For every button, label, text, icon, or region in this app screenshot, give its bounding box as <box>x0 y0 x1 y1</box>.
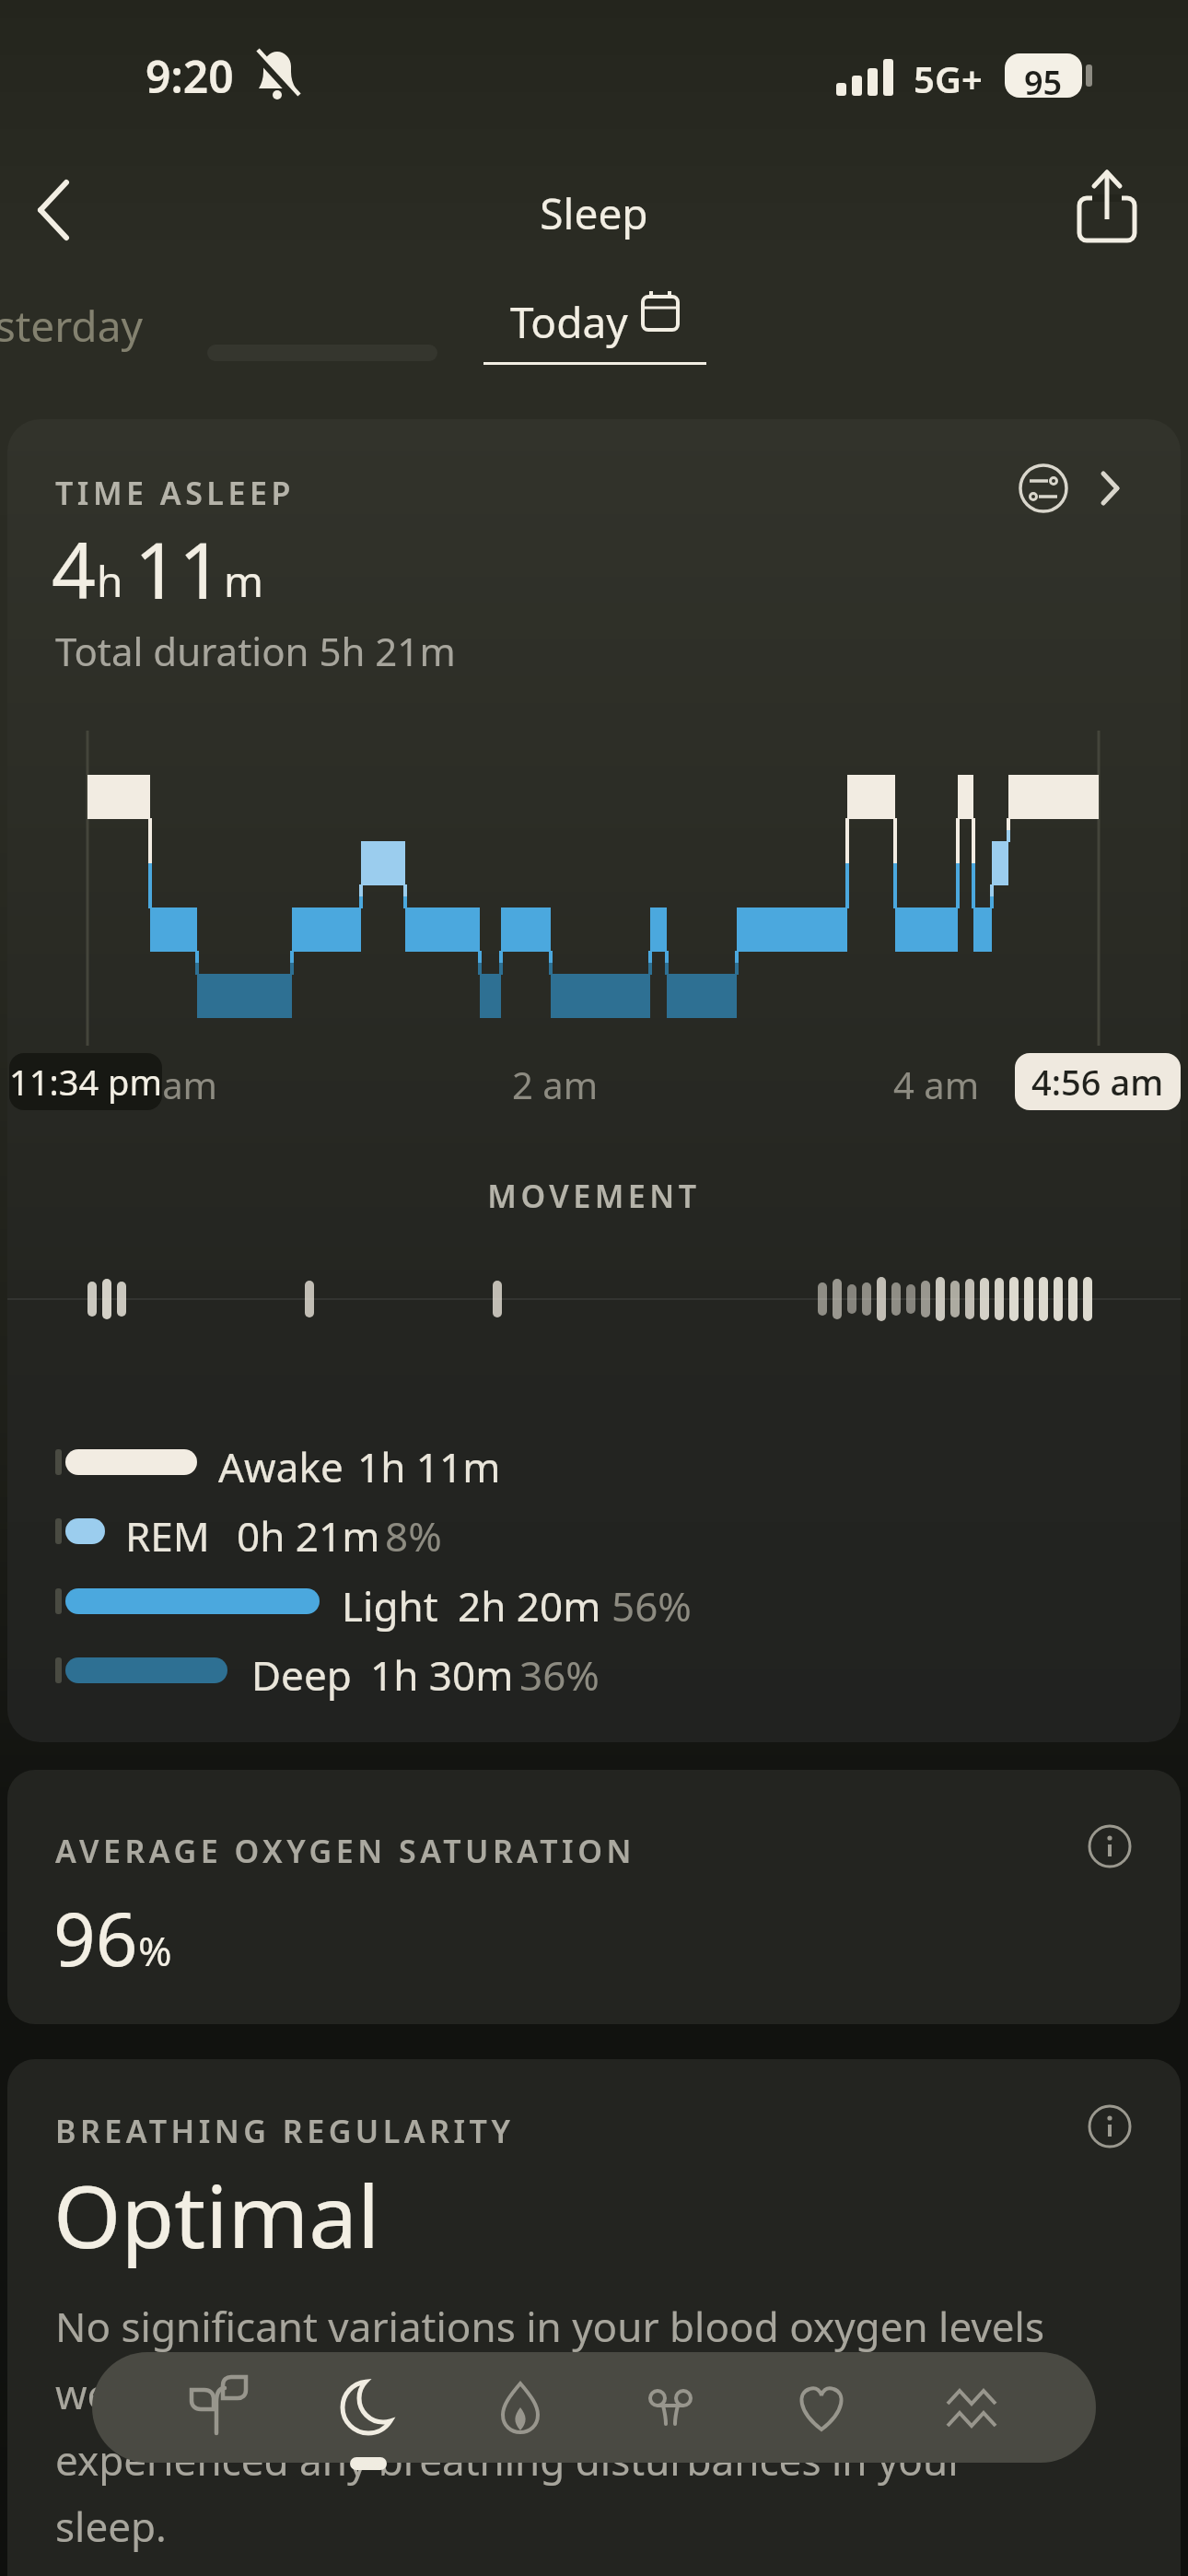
button[interactable] <box>1073 2090 1147 2163</box>
button[interactable] <box>7 1770 1181 2024</box>
staticText: Deep <box>251 1647 352 1703</box>
staticText: REM <box>125 1508 210 1563</box>
button[interactable] <box>460 272 718 369</box>
staticText: AVERAGE OXYGEN SATURATION <box>55 1830 635 1872</box>
button[interactable] <box>748 2352 895 2463</box>
staticText: 4:56 am <box>1031 1058 1164 1106</box>
staticText: 0h 21m <box>237 1508 380 1563</box>
staticText: 9:20 <box>146 46 234 106</box>
staticText: Today <box>510 293 628 351</box>
staticText: 96 <box>53 1887 138 1987</box>
staticText: Total duration 5h 21m <box>55 625 456 677</box>
button[interactable] <box>7 419 1181 1742</box>
button[interactable] <box>597 2352 744 2463</box>
staticText: Sleep <box>540 184 648 242</box>
staticText: BREATHING REGULARITY <box>55 2110 515 2152</box>
staticText: Yesterday <box>0 297 143 355</box>
button[interactable] <box>0 276 203 359</box>
staticText: h <box>97 552 134 610</box>
staticText: 36% <box>519 1647 600 1703</box>
staticText: 2h 20m <box>458 1578 601 1633</box>
staticText: 8% <box>385 1508 442 1563</box>
button[interactable] <box>7 2059 1181 2576</box>
button[interactable] <box>1059 161 1160 253</box>
staticText: No significant variations in your blood … <box>55 2299 1044 2553</box>
staticText: m <box>224 552 264 610</box>
button[interactable] <box>447 2352 594 2463</box>
staticText: 11:34 pm <box>9 1058 162 1106</box>
staticText: % <box>138 1923 172 1978</box>
staticText: 12 am <box>111 1060 217 1109</box>
staticText: Light <box>342 1578 438 1633</box>
staticText: MOVEMENT <box>487 1175 701 1217</box>
staticText: 11 <box>134 516 224 621</box>
button[interactable] <box>898 2352 1045 2463</box>
staticText: 1h 11m <box>357 1439 501 1494</box>
button[interactable] <box>295 2352 442 2463</box>
staticText: 1h 30m <box>370 1647 514 1703</box>
button[interactable] <box>18 166 101 253</box>
staticText: 2 am <box>512 1060 599 1109</box>
staticText: Optimal <box>53 2156 380 2274</box>
staticText: TIME ASLEEP <box>55 472 295 514</box>
button[interactable] <box>145 2352 292 2463</box>
button[interactable] <box>1073 1809 1147 1883</box>
staticText: 4 am <box>893 1060 980 1109</box>
staticText: 5G+ <box>914 53 983 103</box>
staticText: Awake <box>218 1439 344 1494</box>
staticText: 95 <box>1024 60 1063 105</box>
staticText: 56% <box>611 1578 692 1633</box>
staticText: 4 <box>52 516 97 621</box>
